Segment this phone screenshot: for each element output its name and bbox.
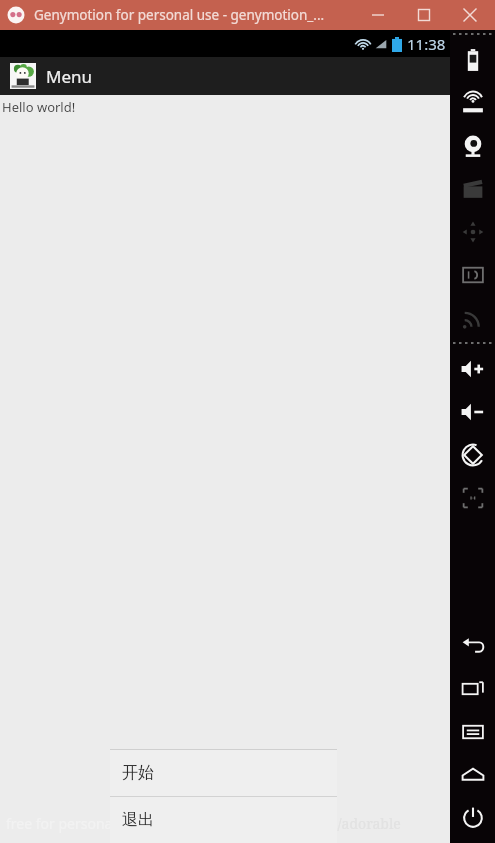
button[interactable]: Maximize <box>401 0 447 30</box>
staticText: free for personal use <box>6 814 143 833</box>
button[interactable]: 开始 <box>110 750 337 796</box>
button[interactable]: Camera <box>450 124 495 167</box>
button[interactable]: Rotate <box>450 433 495 476</box>
button[interactable]: Minimize <box>355 0 401 30</box>
staticText: https://blog.csdn.net/adorable <box>204 814 401 833</box>
button[interactable]: Accelerometer <box>450 210 495 253</box>
button[interactable]: Battery <box>450 38 495 81</box>
button[interactable]: Recents <box>450 667 495 710</box>
button[interactable]: Menu <box>450 710 495 753</box>
staticText: Genymotion for personal use - genymotion… <box>34 6 325 24</box>
button[interactable]: Home <box>450 753 495 796</box>
button[interactable]: Back <box>450 624 495 667</box>
button[interactable]: Power <box>450 796 495 839</box>
staticText: 11:38 <box>407 34 446 54</box>
button[interactable]: Identifiers <box>450 253 495 296</box>
button[interactable]: Close <box>447 0 493 30</box>
staticText: Hello world! <box>2 98 76 116</box>
button[interactable]: Menu <box>0 57 450 95</box>
staticText: 退出 <box>122 810 154 830</box>
button[interactable]: Network <box>450 296 495 339</box>
button[interactable]: Scale 1:1 <box>450 476 495 519</box>
staticText: Menu <box>46 65 93 88</box>
button[interactable]: 退出 <box>110 797 337 843</box>
button[interactable]: Video recorder <box>450 167 495 210</box>
button[interactable]: GPS <box>450 81 495 124</box>
staticText: 开始 <box>122 763 154 783</box>
button[interactable]: Volume down <box>450 390 495 433</box>
button[interactable]: Volume up <box>450 347 495 390</box>
